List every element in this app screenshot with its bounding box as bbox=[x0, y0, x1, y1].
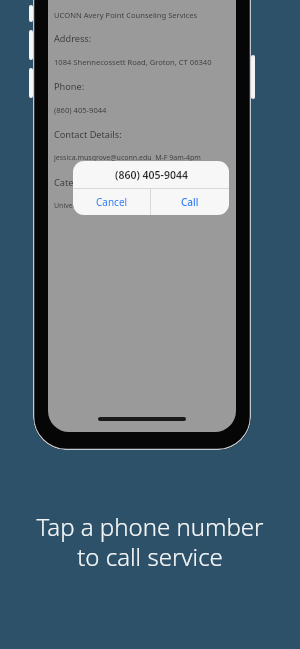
button[interactable]: Volume down bbox=[29, 68, 33, 98]
staticText: University bbox=[54, 201, 87, 211]
staticText: (860) 405-9044 bbox=[115, 168, 188, 182]
button[interactable]: Call bbox=[151, 189, 229, 215]
button[interactable]: Cancel bbox=[73, 189, 150, 215]
staticText: 1084 Shennecossett Road, Groton, CT 0634… bbox=[54, 57, 212, 67]
button[interactable]: (860) 405-9044 bbox=[54, 105, 107, 115]
staticText: UCONN Avery Point Counseling Services bbox=[54, 10, 198, 20]
staticText: Call bbox=[181, 195, 199, 209]
staticText: jessica.musgrove@uconn.edu M-F 9am-4pm bbox=[54, 153, 201, 163]
staticText: (860) 405-9044 bbox=[54, 105, 107, 115]
staticText: Cancel bbox=[96, 195, 128, 209]
staticText: Address: bbox=[54, 32, 92, 45]
button[interactable]: Power bbox=[251, 55, 255, 99]
staticText: Tap a phone number to call service bbox=[36, 510, 264, 573]
button[interactable]: Volume up bbox=[29, 30, 33, 60]
button[interactable]: Ring silent switch bbox=[29, 5, 33, 22]
staticText: Contact Details: bbox=[54, 128, 122, 141]
staticText: Category: bbox=[54, 176, 96, 189]
staticText: Phone: bbox=[54, 80, 85, 93]
